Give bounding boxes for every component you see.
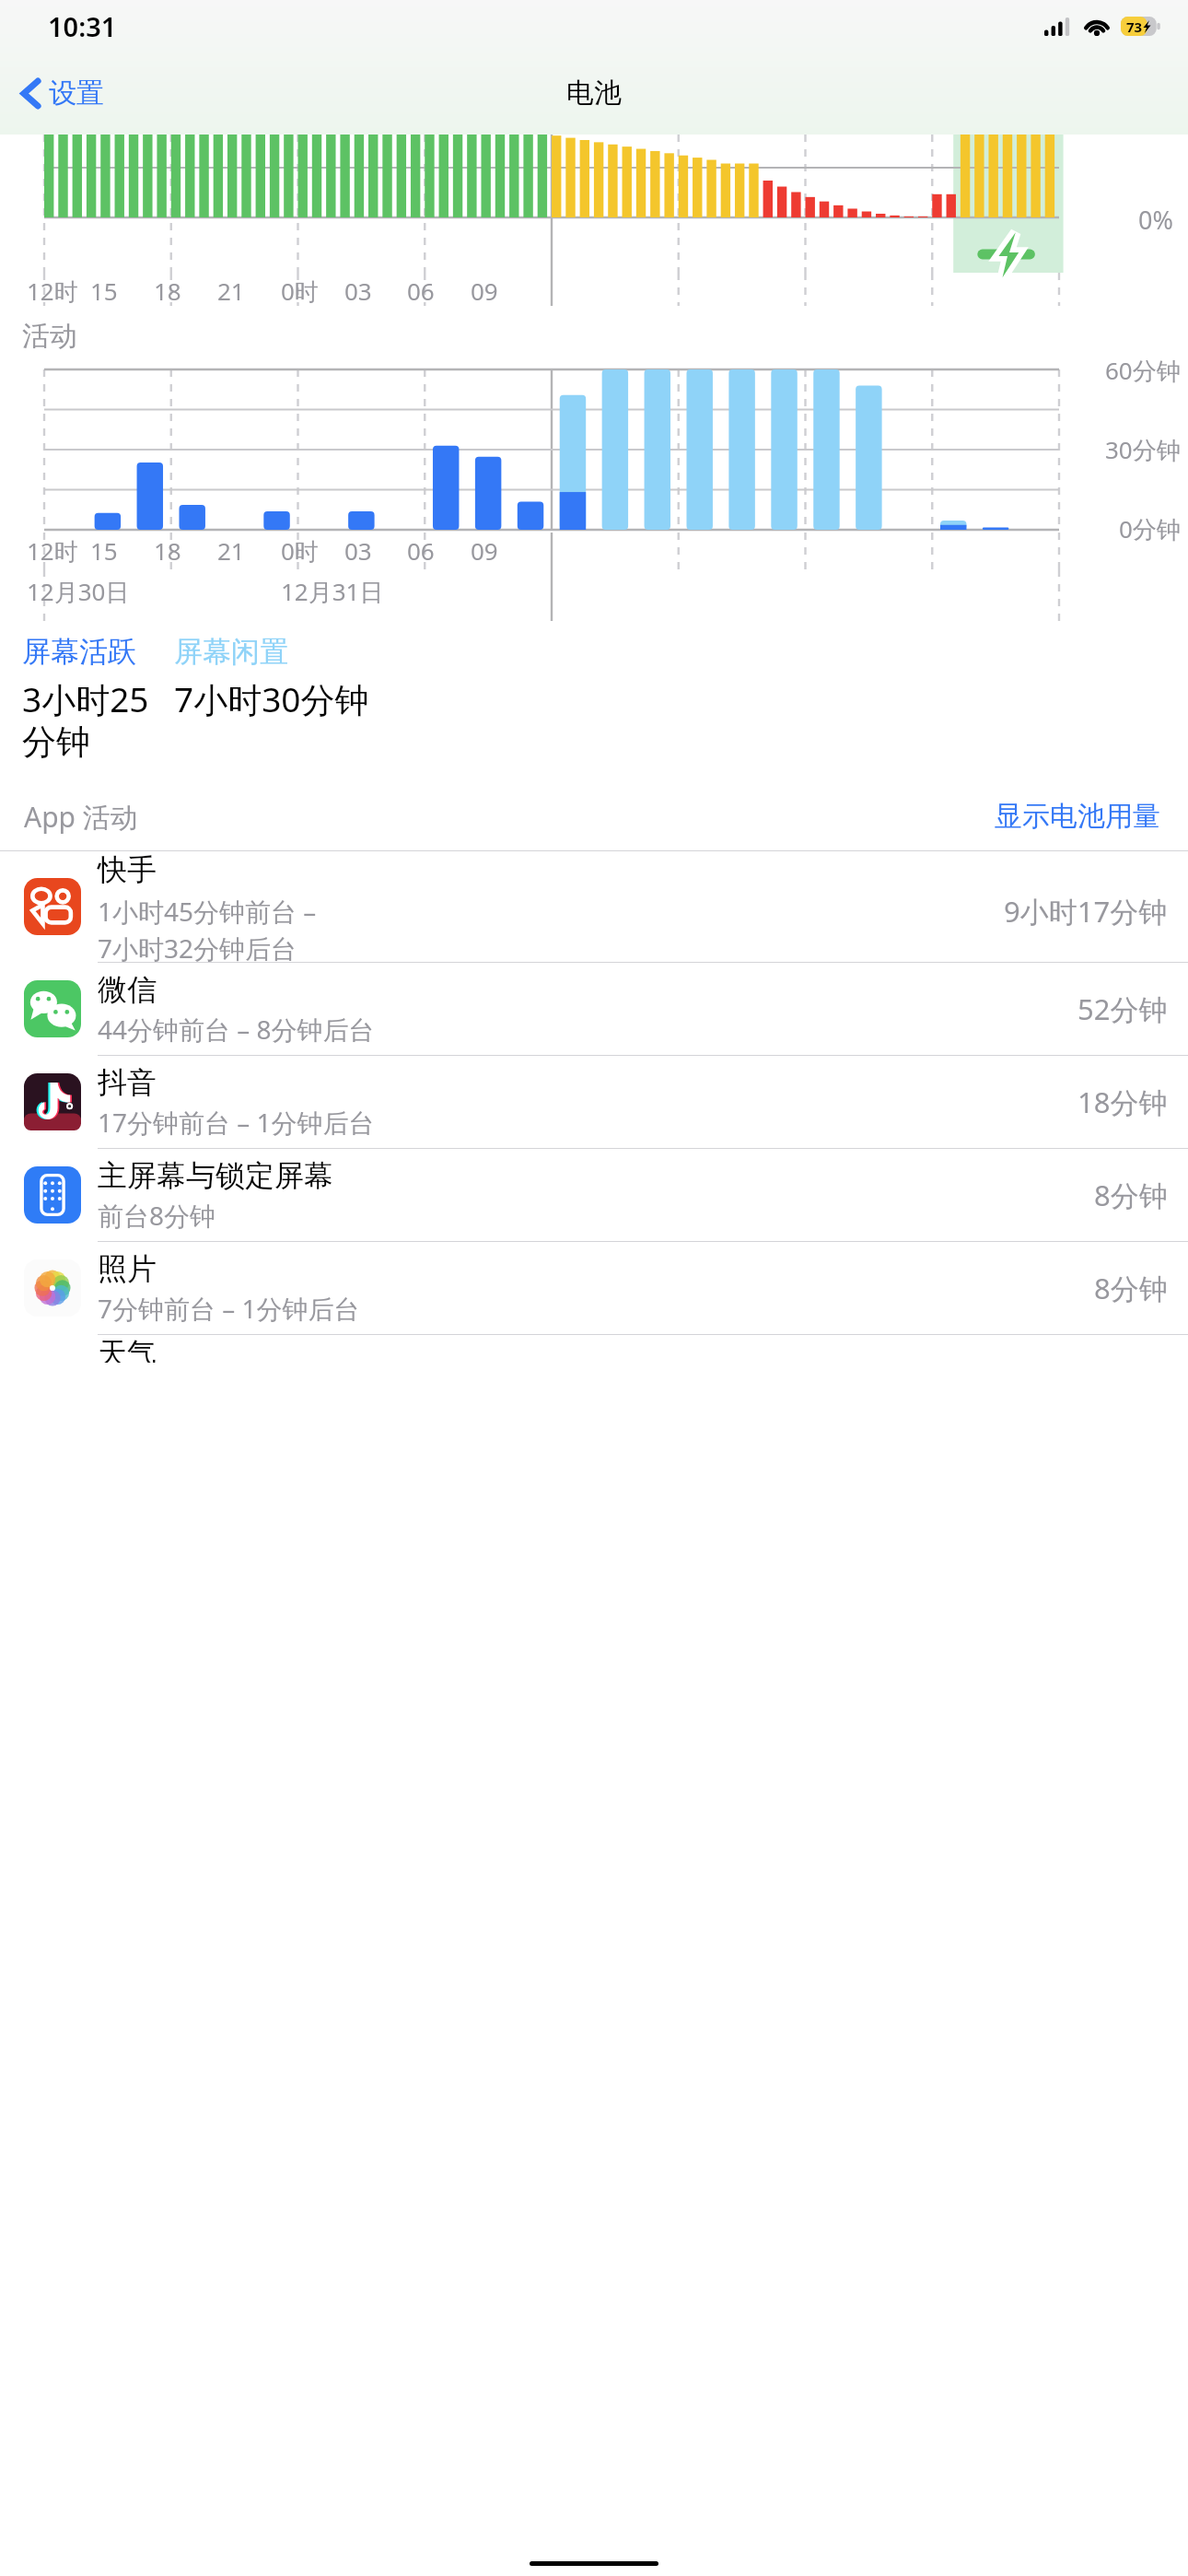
staticText: 15 (90, 275, 118, 306)
staticText: 抖音 (98, 1064, 157, 1101)
staticText: 电池 (566, 76, 622, 111)
staticText: 活动 (22, 319, 77, 354)
staticText: 09 (471, 534, 498, 567)
button[interactable]: 快手 (0, 851, 1188, 962)
staticText: 18分钟 (1077, 1083, 1168, 1121)
button[interactable]: 微信 (0, 963, 1188, 1055)
staticText: 天气 (98, 1335, 157, 1363)
staticText: 12时 (27, 275, 78, 306)
staticText: 21 (217, 275, 245, 306)
staticText: 12月31日 (281, 575, 384, 608)
staticText: 8分钟 (1094, 1176, 1168, 1214)
staticText: 30分钟 (1105, 433, 1181, 466)
staticText: 09 (471, 275, 498, 306)
button[interactable]: Back (13, 68, 113, 118)
button[interactable]: 主屏幕与锁定屏幕 (0, 1149, 1188, 1241)
staticText: 0时 (281, 275, 319, 306)
staticText: 设置 (49, 76, 104, 111)
staticText: 21 (217, 534, 245, 567)
staticText: 0时 (281, 534, 319, 568)
staticText: 0分钟 (1119, 512, 1181, 545)
staticText: 3小时25分钟 (22, 675, 174, 764)
staticText: 1小时45分钟前台 – (98, 894, 317, 929)
button[interactable]: 照片 (0, 1242, 1188, 1334)
staticText: 显示电池用量 (995, 799, 1160, 834)
staticText: 9小时17分钟 (1004, 892, 1168, 931)
staticText: 8分钟 (1094, 1269, 1168, 1307)
staticText: 7分钟前台 – 1分钟后台 (98, 1291, 360, 1326)
staticText: 52分钟 (1077, 989, 1168, 1028)
staticText: 44分钟前台 – 8分钟后台 (98, 1012, 375, 1047)
staticText: 快手 (98, 851, 157, 888)
staticText: 17分钟前台 – 1分钟后台 (98, 1105, 375, 1140)
staticText: 10:31 (48, 8, 117, 44)
staticText: 18 (154, 275, 181, 306)
staticText: 屏幕活跃 (22, 634, 136, 670)
staticText: 微信 (98, 971, 157, 1008)
staticText: 12月30日 (27, 575, 130, 608)
staticText: 屏幕闲置 (174, 634, 288, 670)
staticText: 12时 (27, 534, 78, 568)
staticText: 73 (1126, 18, 1143, 36)
button[interactable]: 抖音 (0, 1056, 1188, 1148)
staticText: 前台8分钟 (98, 1198, 216, 1233)
staticText: 照片 (98, 1250, 157, 1287)
staticText: 03 (344, 534, 372, 567)
other: Back (22, 78, 40, 109)
button[interactable]: 显示电池用量 (991, 795, 1164, 837)
staticText: 主屏幕与锁定屏幕 (98, 1157, 333, 1194)
staticText: 7小时30分钟 (174, 675, 369, 722)
staticText: 18 (154, 534, 181, 567)
staticText: 60分钟 (1105, 354, 1181, 387)
staticText: 06 (407, 534, 435, 567)
staticText: 06 (407, 275, 435, 306)
staticText: 7小时32分钟后台 (98, 931, 297, 962)
staticText: 0% (1138, 203, 1173, 237)
staticText: 15 (90, 534, 118, 567)
staticText: 03 (344, 275, 372, 306)
staticText: App 活动 (24, 798, 138, 836)
